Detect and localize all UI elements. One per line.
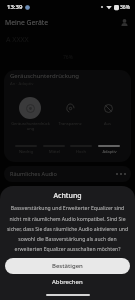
button[interactable]: Account (118, 16, 131, 29)
button[interactable]: Transparenz (50, 97, 90, 126)
staticText: Adaptiv (102, 149, 117, 154)
staticText: Niedrig (19, 149, 33, 154)
button[interactable]: Niedrig (13, 145, 39, 154)
staticText: 13:39 (7, 3, 23, 11)
button[interactable]: Räumliches Audio (4, 166, 131, 182)
staticText: 13:39 (7, 3, 23, 11)
staticText: Meine Geräte (5, 18, 49, 27)
staticText: Abbrechen (52, 278, 83, 286)
button[interactable]: Aus (90, 97, 125, 126)
staticText: Bestätigen (52, 262, 83, 270)
button[interactable]: Bestätigen (5, 258, 130, 274)
staticText: An · Adaptiv (10, 81, 34, 87)
button[interactable]: Geräuschunterdrückung (4, 70, 131, 162)
button[interactable]: Geräuschunterdrück ung (10, 97, 50, 131)
staticText: Räumliches Audio (10, 170, 57, 178)
staticText: Hoch (76, 149, 86, 154)
button[interactable]: Abbrechen (5, 274, 130, 289)
button[interactable]: Hoch (68, 145, 94, 154)
staticText: 76% (63, 54, 73, 61)
button[interactable]: Adaptiv (96, 145, 122, 154)
staticText: Geräuschunterdrück ung (11, 121, 50, 131)
staticText: 36% (120, 4, 130, 11)
button[interactable]: More options (116, 173, 126, 175)
button[interactable]: Mittel (41, 145, 67, 154)
staticText: 36% (120, 4, 130, 11)
staticText: Bassverstärkung und Erweiterter Equalize… (5, 205, 130, 252)
staticText: Aus (104, 121, 111, 126)
staticText: A XXXX (6, 35, 29, 45)
staticText: Achtung (53, 191, 82, 201)
staticText: Mittel (49, 149, 60, 154)
staticText: Transparenz (58, 121, 82, 126)
staticText: Geräuschunterdrückung (10, 72, 80, 80)
